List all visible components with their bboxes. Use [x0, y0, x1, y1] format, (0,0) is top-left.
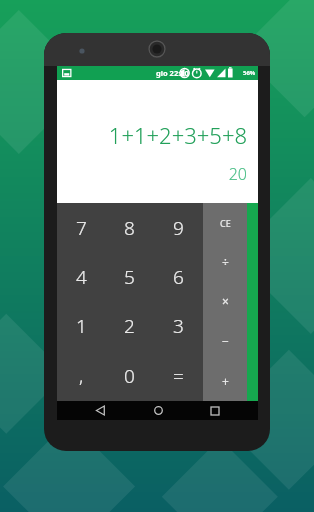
staticText: 1	[76, 313, 87, 339]
staticText: 7	[76, 215, 87, 241]
button[interactable]: 0	[105, 351, 154, 401]
button[interactable]: 8	[105, 203, 154, 252]
staticText: 8	[124, 215, 135, 241]
staticText: ×	[222, 293, 229, 309]
button[interactable]: 1	[57, 301, 105, 351]
button[interactable]: CE	[203, 203, 247, 242]
staticText: ,	[79, 363, 84, 389]
button[interactable]: ,	[57, 351, 105, 401]
button[interactable]: +	[203, 361, 247, 401]
button[interactable]: 5	[105, 252, 154, 301]
staticText: +	[222, 373, 229, 389]
button[interactable]: ÷	[203, 242, 247, 281]
button[interactable]: 3	[154, 301, 203, 351]
staticText: 2	[124, 313, 135, 339]
staticText: gio 22:20	[156, 68, 189, 78]
button[interactable]: 2	[105, 301, 154, 351]
staticText: 6	[173, 264, 184, 290]
button[interactable]: Home	[143, 401, 173, 420]
staticText: 1+1+2+3+5+8	[108, 120, 247, 150]
staticText: 0	[124, 363, 135, 389]
staticText: 56%	[243, 69, 256, 77]
staticText: 20	[228, 163, 247, 185]
staticText: =	[173, 363, 184, 389]
staticText: 5	[124, 264, 135, 290]
staticText: 3	[173, 313, 184, 339]
staticText: 4	[76, 264, 87, 290]
button[interactable]: Back	[85, 401, 115, 420]
button[interactable]: ×	[203, 281, 247, 321]
button[interactable]: 7	[57, 203, 105, 252]
staticText: −	[222, 333, 229, 349]
staticText: CE	[220, 217, 231, 229]
button[interactable]: 4	[57, 252, 105, 301]
staticText: 9	[173, 215, 184, 241]
button[interactable]: Recent apps	[200, 401, 230, 420]
button[interactable]: −	[203, 321, 247, 361]
button[interactable]: =	[154, 351, 203, 401]
button[interactable]: 6	[154, 252, 203, 301]
button[interactable]: 9	[154, 203, 203, 252]
staticText: ÷	[222, 254, 229, 270]
